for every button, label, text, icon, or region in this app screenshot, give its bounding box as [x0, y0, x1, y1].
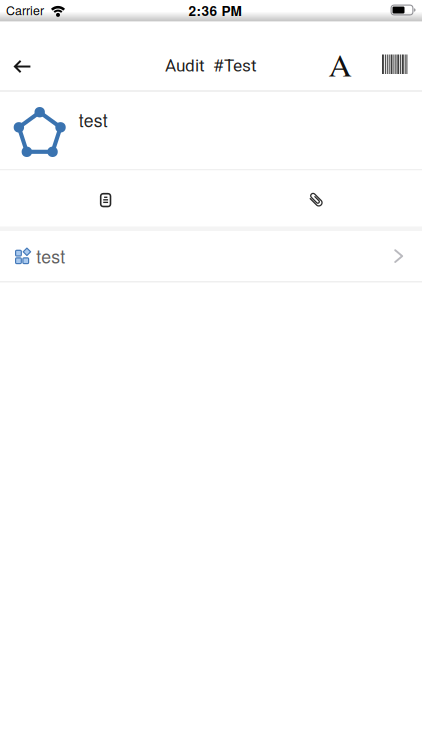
- staticText: test: [36, 243, 65, 269]
- staticText: Audit #Test: [165, 55, 257, 76]
- staticText: Carrier: [6, 1, 44, 19]
- button[interactable]: test: [0, 231, 422, 281]
- button[interactable]: Scan barcode: [374, 50, 418, 78]
- button[interactable]: test: [0, 92, 422, 169]
- button[interactable]: Back: [8, 54, 40, 80]
- staticText: 2:36 PM: [188, 1, 241, 20]
- button[interactable]: Notes: [0, 170, 211, 226]
- staticText: A: [328, 42, 351, 85]
- staticText: test: [79, 107, 108, 132]
- button[interactable]: Text size: [322, 48, 358, 80]
- button[interactable]: Attachments: [211, 170, 422, 226]
